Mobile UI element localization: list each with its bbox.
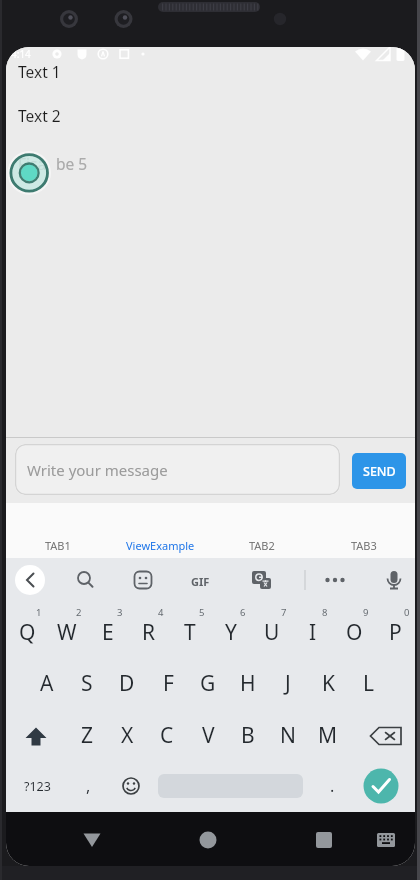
- button[interactable]: E: [88, 606, 128, 658]
- staticText: .: [330, 775, 335, 797]
- staticText: V: [202, 721, 215, 750]
- staticText: TAB2: [249, 538, 275, 553]
- staticText: J: [285, 669, 291, 698]
- button[interactable]: ,: [68, 760, 108, 812]
- staticText: Text 2: [18, 105, 61, 126]
- button[interactable]: P: [375, 606, 415, 658]
- staticText: 7: [281, 606, 287, 619]
- button[interactable]: G: [188, 657, 228, 709]
- button[interactable]: [361, 766, 401, 806]
- staticText: 5: [199, 606, 205, 619]
- button[interactable]: [111, 760, 151, 812]
- button[interactable]: V: [188, 709, 228, 761]
- button[interactable]: [12, 562, 48, 598]
- button[interactable]: TAB3: [313, 503, 415, 558]
- button[interactable]: N: [268, 709, 308, 761]
- button[interactable]: [125, 562, 161, 598]
- button[interactable]: H: [228, 657, 268, 709]
- button[interactable]: W: [47, 606, 87, 658]
- button[interactable]: [369, 708, 409, 760]
- staticText: M: [318, 721, 338, 750]
- button[interactable]: [16, 708, 56, 760]
- button[interactable]: T: [170, 606, 210, 658]
- staticText: 4:14: [11, 47, 31, 61]
- staticText: X: [121, 721, 134, 750]
- button[interactable]: .: [312, 760, 352, 812]
- staticText: Text 1: [18, 61, 61, 82]
- staticText: F: [163, 669, 174, 698]
- staticText: 3: [117, 606, 123, 619]
- button[interactable]: K: [308, 657, 348, 709]
- staticText: N: [280, 721, 296, 750]
- button[interactable]: TAB1: [6, 503, 109, 558]
- staticText: A: [40, 669, 54, 698]
- button[interactable]: [243, 562, 279, 598]
- staticText: Q: [19, 618, 36, 647]
- staticText: P: [389, 618, 402, 647]
- button[interactable]: X: [107, 709, 147, 761]
- staticText: ,: [86, 775, 91, 797]
- button[interactable]: J: [268, 657, 308, 709]
- staticText: be 5: [56, 153, 88, 174]
- staticText: H: [240, 669, 256, 698]
- staticText: 8: [322, 606, 328, 619]
- button[interactable]: SEND: [352, 453, 406, 489]
- staticText: Z: [81, 721, 94, 750]
- button[interactable]: Z: [67, 709, 107, 761]
- button[interactable]: M: [308, 709, 348, 761]
- staticText: B: [241, 721, 255, 750]
- button[interactable]: O: [334, 606, 374, 658]
- staticText: K: [322, 669, 335, 698]
- button[interactable]: [67, 562, 103, 598]
- staticText: 9: [363, 606, 369, 619]
- button[interactable]: F: [148, 657, 188, 709]
- staticText: GIF: [191, 574, 210, 589]
- staticText: C: [160, 721, 174, 750]
- button[interactable]: Y: [211, 606, 251, 658]
- staticText: 1: [36, 606, 42, 619]
- button[interactable]: L: [349, 657, 389, 709]
- button[interactable]: B: [228, 709, 268, 761]
- button[interactable]: Write your message: [15, 444, 340, 495]
- staticText: W: [57, 618, 77, 647]
- button[interactable]: [317, 562, 353, 598]
- staticText: T: [184, 618, 196, 647]
- staticText: SEND: [363, 463, 396, 480]
- button[interactable]: [376, 562, 412, 598]
- button[interactable]: R: [129, 606, 169, 658]
- staticText: TAB1: [45, 538, 71, 553]
- staticText: 6: [240, 606, 246, 619]
- staticText: R: [142, 618, 156, 647]
- button[interactable]: Q: [7, 606, 47, 658]
- staticText: L: [363, 669, 375, 698]
- staticText: O: [346, 618, 363, 647]
- button[interactable]: U: [252, 606, 292, 658]
- button[interactable]: ViewExample: [109, 503, 211, 558]
- button[interactable]: [186, 818, 230, 862]
- staticText: 4: [158, 606, 164, 619]
- button[interactable]: ?123: [17, 760, 57, 812]
- staticText: Fisa: [18, 153, 47, 174]
- button[interactable]: A: [27, 657, 67, 709]
- staticText: Write your message: [27, 460, 168, 480]
- staticText: 2: [76, 606, 82, 619]
- button[interactable]: [302, 818, 346, 862]
- staticText: ViewExample: [126, 538, 195, 553]
- staticText: U: [264, 618, 280, 647]
- staticText: TAB3: [351, 538, 377, 553]
- staticText: E: [102, 618, 114, 647]
- button[interactable]: C: [147, 709, 187, 761]
- button[interactable]: TAB2: [211, 503, 313, 558]
- staticText: S: [81, 669, 93, 698]
- button[interactable]: I: [293, 606, 333, 658]
- button[interactable]: D: [107, 657, 147, 709]
- button[interactable]: [189, 562, 225, 598]
- button[interactable]: [70, 818, 114, 862]
- staticText: Y: [225, 618, 237, 647]
- button[interactable]: S: [67, 657, 107, 709]
- staticText: 0: [404, 606, 410, 619]
- staticText: G: [200, 669, 216, 698]
- staticText: ?123: [24, 778, 51, 795]
- staticText: D: [119, 669, 135, 698]
